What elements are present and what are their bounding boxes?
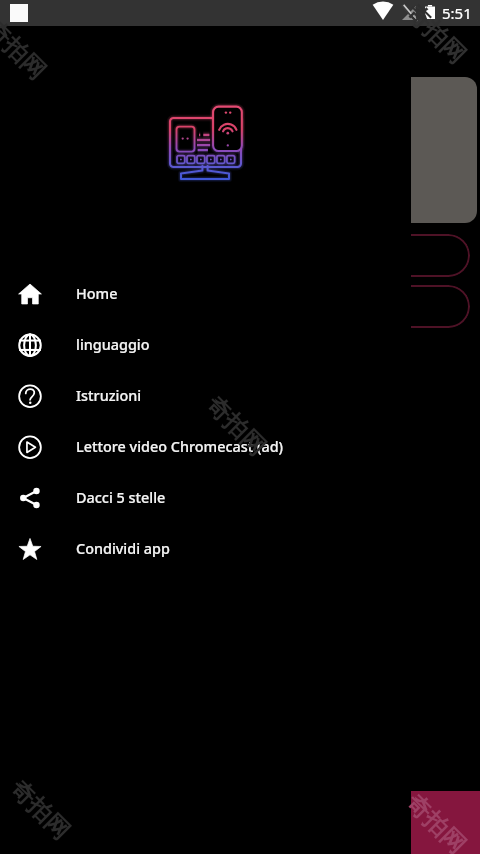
staticText: Istruzioni <box>76 386 142 406</box>
button[interactable]: linguaggio <box>0 319 411 370</box>
staticText: 奇拍网 <box>200 390 272 462</box>
staticText: linguaggio <box>76 335 150 355</box>
staticText: 奇拍网 <box>400 788 472 854</box>
button[interactable]: Home <box>0 268 411 319</box>
staticText: 5:51 <box>442 3 472 23</box>
button[interactable]: Istruzioni <box>0 370 411 421</box>
button[interactable]: Dacci 5 stelle <box>0 472 411 523</box>
staticText: Home <box>76 284 118 304</box>
button[interactable]: Connetti <box>336 234 470 277</box>
staticText: Lettore video Chromecast (ad) <box>76 437 284 457</box>
button[interactable]: Lettore video Chromecast (ad) <box>0 421 411 472</box>
staticText: 奇拍网 <box>400 0 472 70</box>
staticText: 奇拍网 <box>0 14 52 86</box>
button[interactable]: Guida <box>336 285 470 328</box>
button[interactable]: Annuncio <box>411 791 480 854</box>
staticText: Dacci 5 stelle <box>76 488 166 508</box>
staticText: 奇拍网 <box>4 774 76 846</box>
button[interactable]: Condividi app <box>0 523 411 574</box>
staticText: Condividi app <box>76 539 170 559</box>
